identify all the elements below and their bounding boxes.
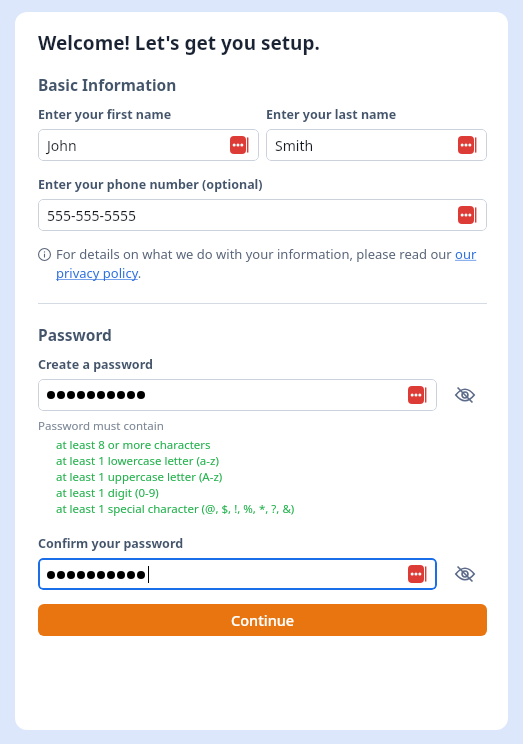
staticText: For details on what we do with your info… <box>56 245 487 282</box>
staticText: Continue <box>231 610 295 630</box>
staticText: John <box>47 136 77 155</box>
staticText: at least 8 or more characters <box>56 437 211 453</box>
button[interactable]: Show password <box>451 560 479 588</box>
staticText: at least 1 special character (@, $, !, %… <box>56 501 295 517</box>
staticText: 555-555-5555 <box>47 206 137 225</box>
button[interactable]: Continue <box>38 604 487 636</box>
button[interactable] <box>38 558 437 590</box>
staticText: Basic Information <box>38 74 177 95</box>
staticText: at least 1 digit (0-9) <box>56 485 159 501</box>
staticText: at least 1 lowercase letter (a-z) <box>56 453 219 469</box>
button[interactable]: John <box>38 129 259 161</box>
staticText: Create a password <box>38 356 153 373</box>
staticText: Smith <box>275 136 314 155</box>
button[interactable]: Show password <box>451 381 479 409</box>
button[interactable]: Smith <box>266 129 487 161</box>
other: Show password <box>454 384 476 406</box>
button[interactable]: 555-555-5555 <box>38 199 487 231</box>
staticText: Confirm your password <box>38 535 184 552</box>
staticText: Password <box>38 324 112 345</box>
staticText: Enter your last name <box>266 106 397 123</box>
staticText: at least 1 uppercase letter (A-z) <box>56 469 223 485</box>
button[interactable] <box>38 379 437 411</box>
staticText: Enter your first name <box>38 106 172 123</box>
staticText: Password must contain <box>38 418 164 434</box>
other: Show password <box>454 563 476 585</box>
staticText: Enter your phone number (optional) <box>38 176 263 193</box>
staticText: Welcome! Let's get you setup. <box>38 30 320 56</box>
